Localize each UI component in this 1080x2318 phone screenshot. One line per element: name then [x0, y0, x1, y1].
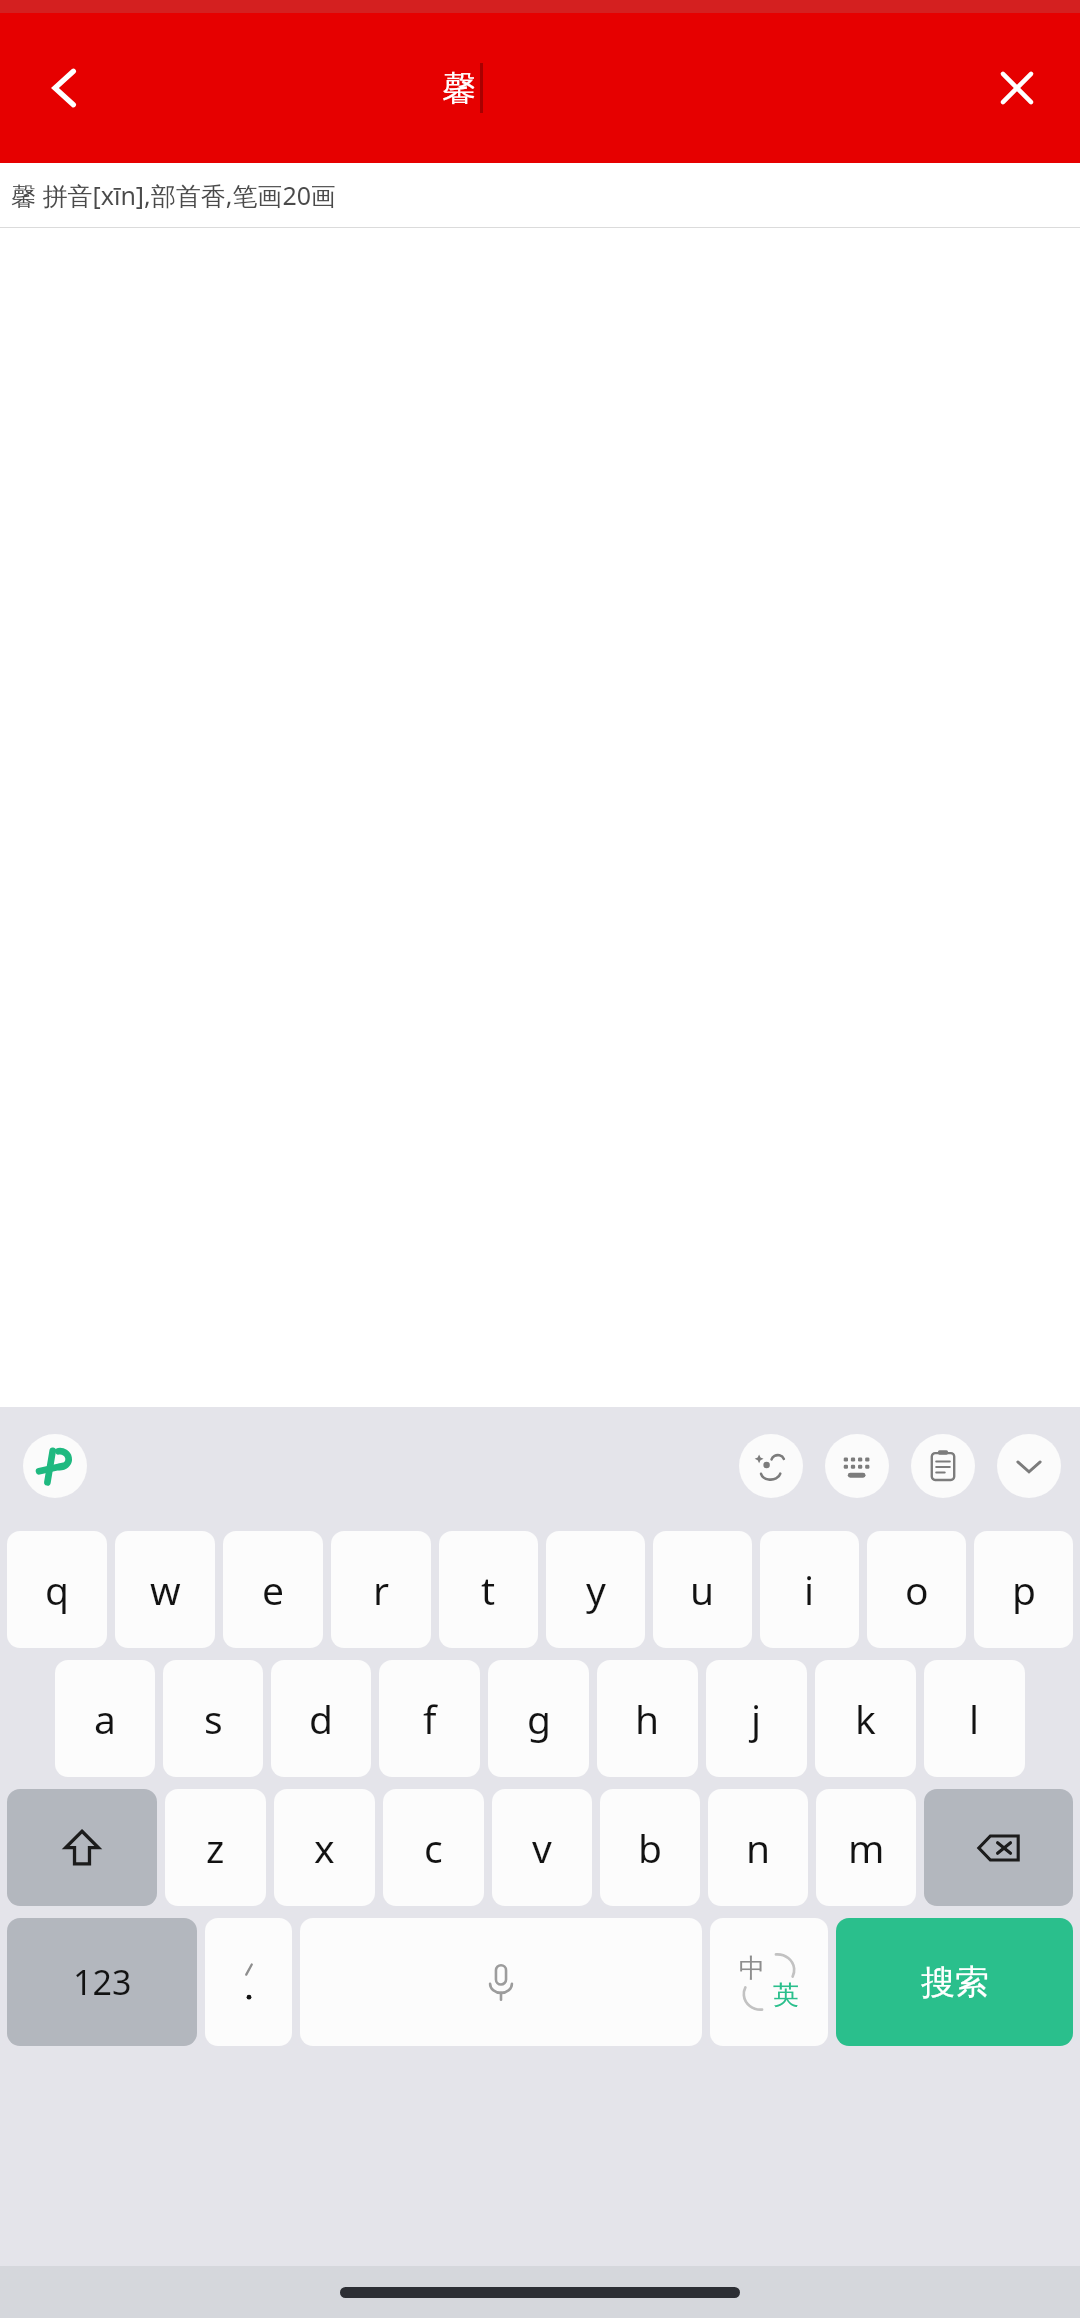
button[interactable]: Back — [20, 43, 110, 133]
button[interactable]: 搜索 — [836, 1918, 1073, 2046]
button[interactable]: v — [492, 1789, 592, 1906]
staticText: e — [262, 1563, 284, 1616]
button[interactable]: c — [383, 1789, 484, 1906]
button[interactable]: m — [816, 1789, 916, 1906]
staticText: m — [848, 1821, 885, 1874]
staticText: p — [1012, 1563, 1036, 1616]
button[interactable]: s — [163, 1660, 263, 1777]
staticText: y — [586, 1563, 606, 1616]
button[interactable]: i — [760, 1531, 859, 1648]
button[interactable]: y — [546, 1531, 645, 1648]
staticText: d — [309, 1692, 333, 1745]
staticText: 英 — [773, 1979, 799, 2012]
staticText: c — [424, 1821, 443, 1874]
staticText: r — [373, 1563, 390, 1616]
staticText: t — [481, 1563, 496, 1616]
button[interactable]: 馨 拼音[xīn],部首香,笔画20画 — [0, 163, 1080, 228]
staticText: u — [690, 1563, 715, 1616]
staticText: j — [751, 1692, 762, 1745]
button[interactable]: Clipboard — [911, 1434, 975, 1498]
button[interactable]: t — [439, 1531, 538, 1648]
button[interactable]: Keyboard settings — [23, 1434, 87, 1498]
button[interactable]: x — [274, 1789, 375, 1906]
staticText: v — [532, 1821, 552, 1874]
button[interactable]: g — [488, 1660, 589, 1777]
button[interactable]: o — [867, 1531, 966, 1648]
button[interactable]: k — [815, 1660, 916, 1777]
button[interactable]: z — [165, 1789, 266, 1906]
button[interactable]: e — [223, 1531, 323, 1648]
staticText: z — [206, 1821, 225, 1874]
button[interactable]: 123 — [7, 1918, 197, 2046]
staticText: s — [204, 1692, 223, 1745]
staticText: i — [804, 1563, 815, 1616]
staticText: n — [746, 1821, 771, 1874]
button[interactable]: b — [600, 1789, 700, 1906]
staticText: q — [45, 1563, 69, 1616]
button[interactable]: f — [379, 1660, 480, 1777]
button[interactable]: u — [653, 1531, 752, 1648]
staticText: 中 — [739, 1952, 765, 1985]
staticText: k — [855, 1692, 876, 1745]
staticText: o — [905, 1563, 929, 1616]
staticText: 123 — [73, 1959, 132, 2005]
button[interactable]: j — [706, 1660, 807, 1777]
button[interactable]: Comma and period — [205, 1918, 292, 2046]
button[interactable]: Keyboard layout — [825, 1434, 889, 1498]
button[interactable]: Hide keyboard — [997, 1434, 1061, 1498]
button[interactable]: p — [974, 1531, 1073, 1648]
button[interactable]: Emoji — [739, 1434, 803, 1498]
staticText: a — [94, 1692, 116, 1745]
staticText: h — [635, 1692, 660, 1745]
button[interactable]: Space and voice input — [300, 1918, 702, 2046]
button[interactable]: Switch Chinese English — [710, 1918, 828, 2046]
staticText: 馨 — [442, 67, 476, 110]
staticText: l — [969, 1692, 980, 1745]
button[interactable]: d — [271, 1660, 371, 1777]
button[interactable]: Shift — [7, 1789, 157, 1906]
button[interactable]: r — [331, 1531, 431, 1648]
button[interactable]: w — [115, 1531, 215, 1648]
staticText: g — [527, 1692, 551, 1745]
button[interactable]: h — [597, 1660, 698, 1777]
staticText: x — [314, 1821, 335, 1874]
button[interactable]: q — [7, 1531, 107, 1648]
staticText: w — [150, 1563, 181, 1616]
button[interactable]: Close — [972, 43, 1062, 133]
button[interactable]: Backspace — [924, 1789, 1073, 1906]
staticText: 搜索 — [921, 1961, 989, 2004]
staticText: b — [638, 1821, 662, 1874]
button[interactable]: n — [708, 1789, 808, 1906]
staticText: 馨 拼音[xīn],部首香,笔画20画 — [11, 178, 337, 212]
staticText: f — [423, 1692, 437, 1745]
button[interactable]: l — [924, 1660, 1025, 1777]
button[interactable]: a — [55, 1660, 155, 1777]
